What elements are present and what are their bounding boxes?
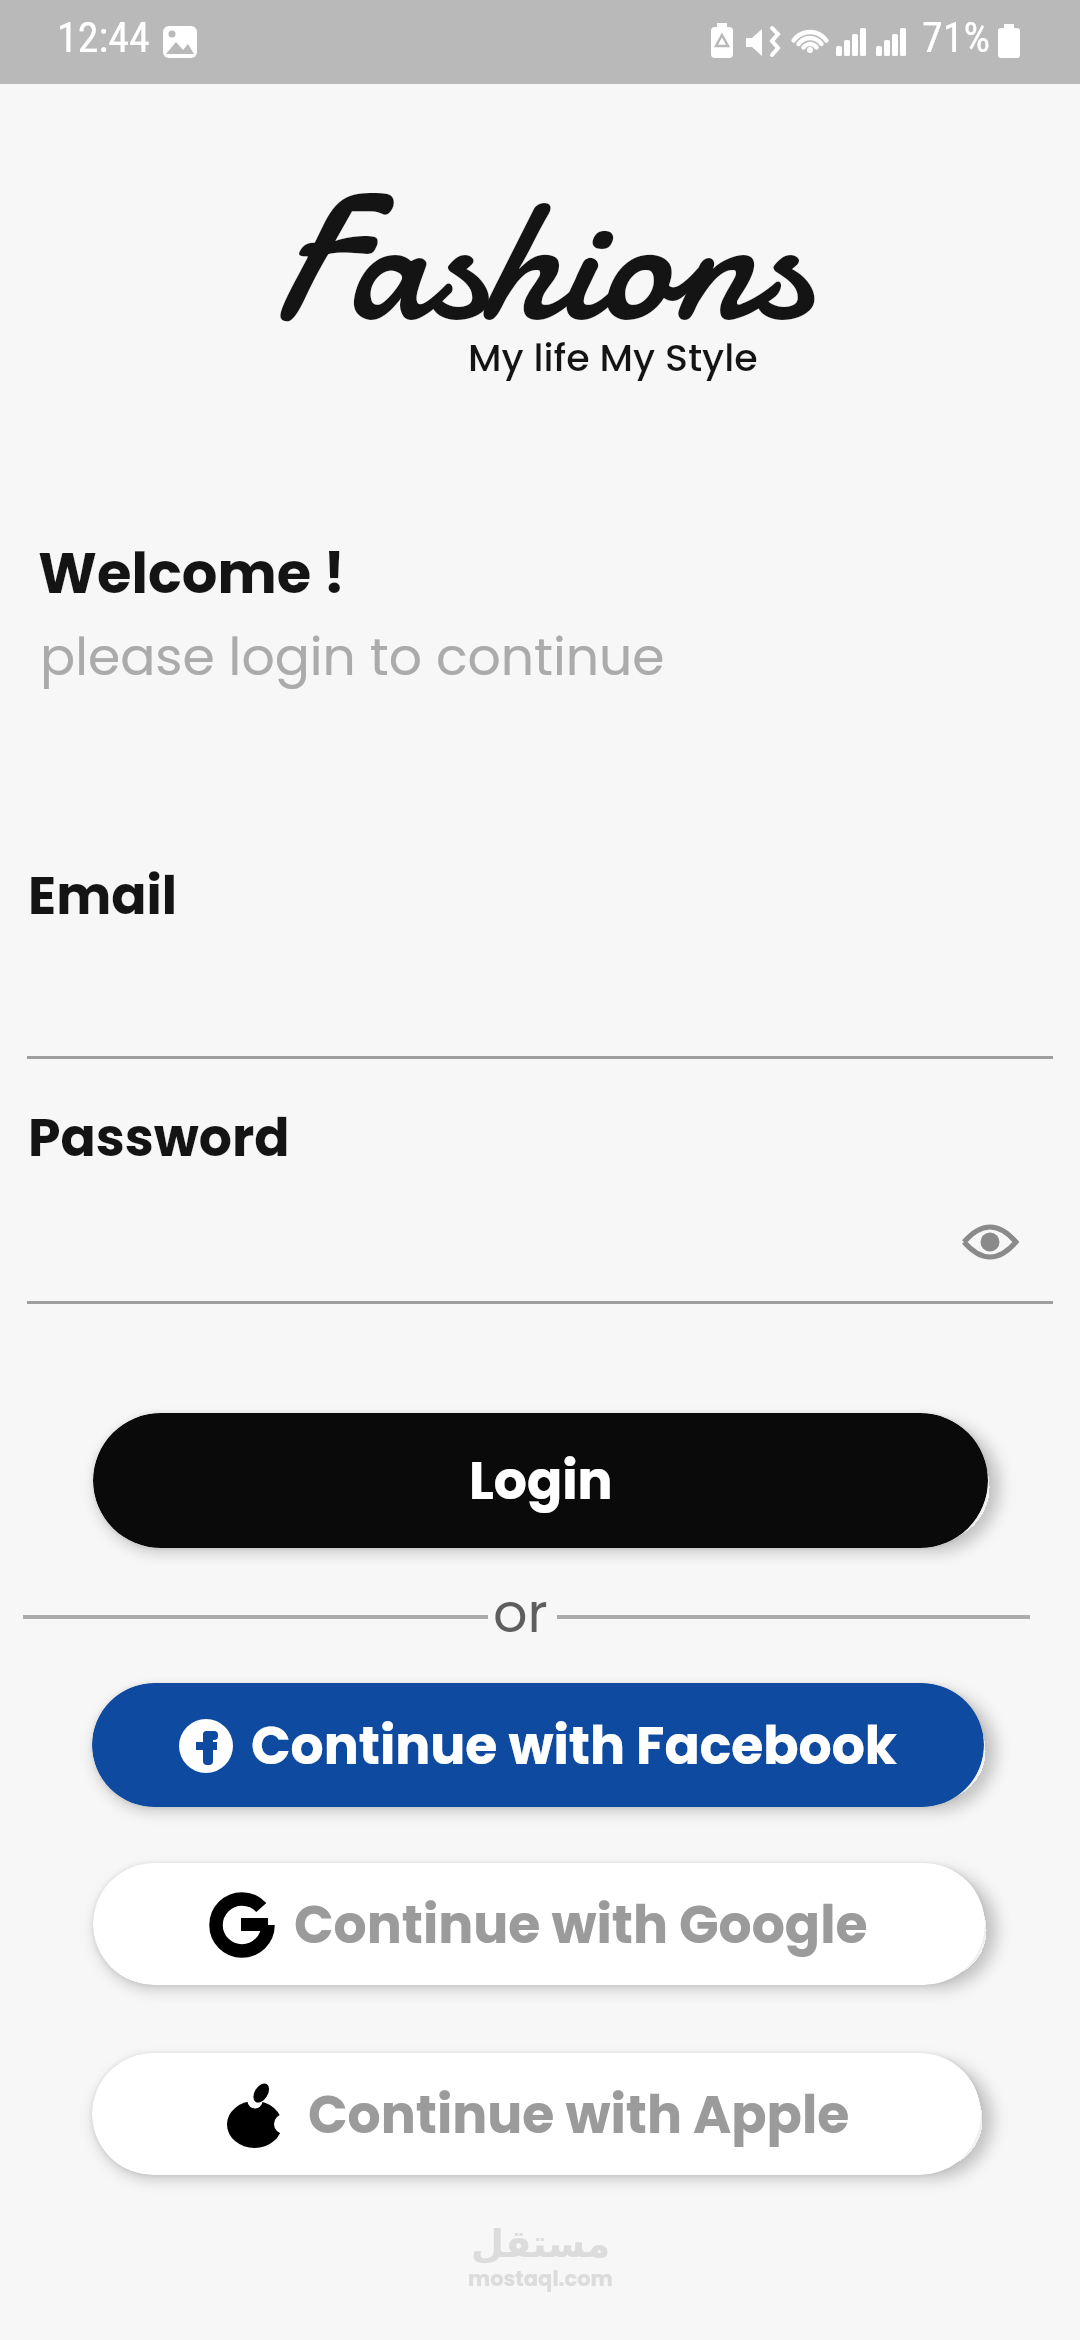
staticText: please login to continue — [40, 620, 665, 693]
staticText: Continue with Facebook — [251, 1709, 897, 1782]
button[interactable]: Continue with Facebook — [92, 1683, 984, 1807]
button[interactable]: Continue with Apple — [92, 2053, 981, 2175]
button[interactable] — [962, 1220, 1018, 1264]
button[interactable]: Login — [93, 1413, 988, 1548]
staticText: mostaql.com — [468, 2264, 613, 2293]
staticText: Email — [28, 859, 178, 932]
staticText: My life My Style — [468, 331, 758, 384]
staticText: Login — [469, 1444, 613, 1517]
staticText: Continue with Apple — [308, 2078, 850, 2151]
staticText: Continue with Google — [294, 1888, 868, 1961]
staticText: Fashions — [275, 140, 812, 382]
staticText: 71% — [922, 13, 991, 62]
staticText: Password — [28, 1101, 290, 1174]
button[interactable]: Continue with Google — [93, 1863, 985, 1985]
staticText: Welcome ! — [38, 534, 346, 612]
staticText: 12:44 — [57, 13, 150, 62]
staticText: or — [493, 1575, 548, 1651]
staticText: مستقل — [471, 2222, 610, 2266]
